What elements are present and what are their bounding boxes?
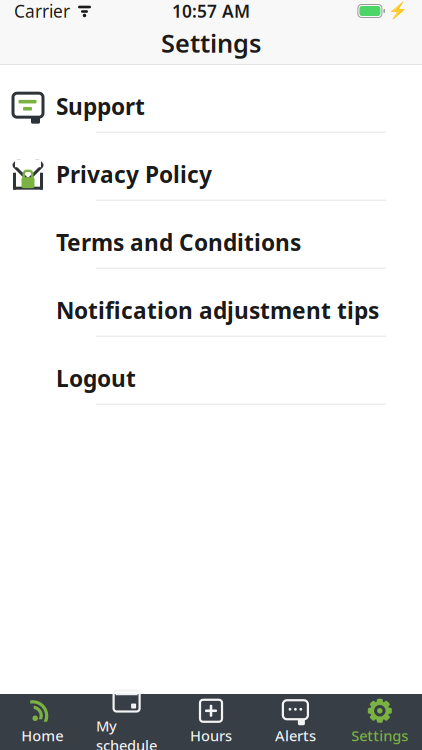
button[interactable]: My schedule	[84, 696, 169, 748]
button[interactable]: Settings	[338, 696, 422, 748]
staticText: Hours	[190, 726, 232, 745]
button[interactable]: Home	[0, 696, 84, 748]
staticText: Settings	[161, 26, 261, 60]
button[interactable]: Support	[0, 73, 422, 141]
staticText: Logout	[56, 363, 136, 393]
staticText: ⚡	[388, 2, 408, 20]
staticText: Privacy Policy	[56, 159, 212, 189]
staticText: Alerts	[275, 726, 316, 745]
button[interactable]: Alerts	[253, 696, 338, 748]
button[interactable]: Terms and Conditions	[0, 209, 422, 277]
staticText: Home	[21, 726, 63, 745]
button[interactable]: Logout	[0, 345, 422, 413]
button[interactable]: Hours	[169, 696, 253, 748]
staticText: Terms and Conditions	[56, 227, 301, 257]
staticText: Support	[56, 91, 145, 121]
button[interactable]: Notification adjustment tips	[0, 277, 422, 345]
staticText: My schedule	[96, 716, 157, 750]
button[interactable]: Privacy Policy	[0, 141, 422, 209]
staticText: Settings	[351, 726, 408, 745]
staticText: Notification adjustment tips	[56, 295, 379, 325]
staticText: Carrier	[14, 0, 70, 22]
staticText: 10:57 AM	[172, 0, 250, 22]
